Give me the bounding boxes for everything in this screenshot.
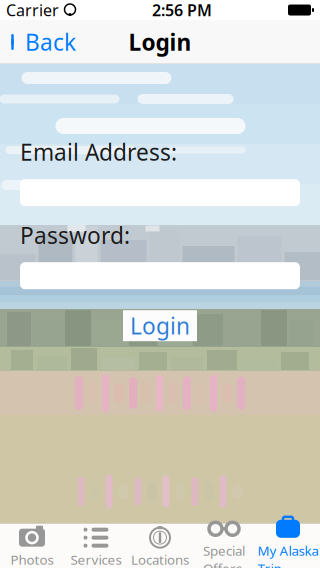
button[interactable]: Login [123,310,197,341]
button[interactable]: Locations [128,522,192,568]
staticText: Password: [20,220,130,250]
staticText: Login [130,311,190,341]
staticText: My Alaska Trip [257,542,318,568]
staticText: 2:56 PM [152,0,212,21]
button[interactable]: Back [0,20,84,64]
staticText: Services [70,551,121,568]
staticText: Back [25,27,76,57]
staticText: Special Offers [203,542,245,568]
staticText: Login [128,27,191,57]
button[interactable]: Services [64,522,128,568]
staticText: Locations [131,551,189,568]
staticText: Photos [10,551,53,568]
button[interactable]: Special Offers [192,513,256,568]
button[interactable]: Photos [0,522,64,568]
button[interactable]: My Alaska Trip [256,513,320,568]
staticText: Email Address: [20,137,177,167]
staticText: Carrier [6,0,59,21]
